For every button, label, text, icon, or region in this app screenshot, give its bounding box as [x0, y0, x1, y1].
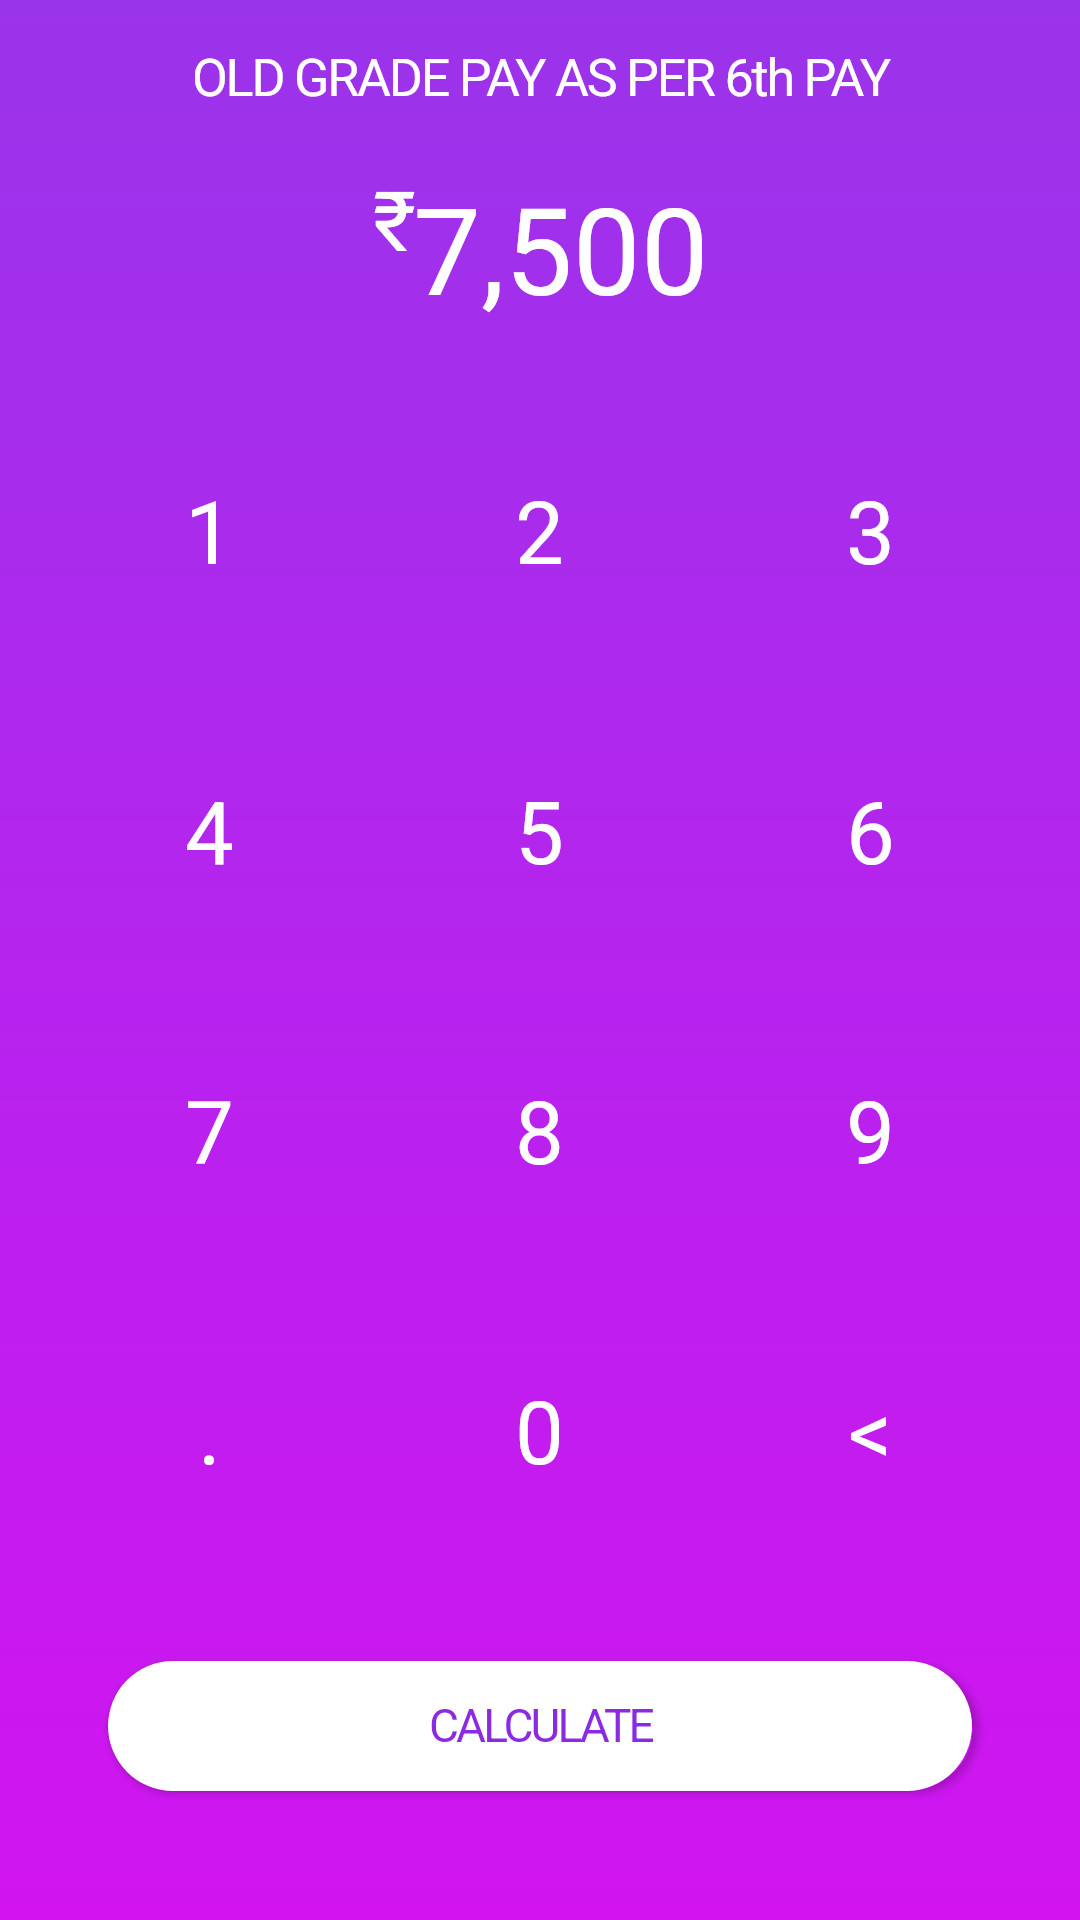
staticText: . — [198, 1383, 221, 1485]
button[interactable]: 8 — [374, 984, 705, 1284]
staticText: ₹ — [373, 174, 416, 271]
button[interactable]: Decimal point — [44, 1284, 374, 1584]
button[interactable]: 7 — [44, 984, 374, 1284]
staticText: 6 — [846, 783, 895, 885]
button[interactable]: 0 — [374, 1284, 705, 1584]
staticText: 7 — [185, 1083, 234, 1185]
staticText: OLD GRADE PAY AS PER 6th PAY — [192, 48, 889, 109]
staticText: 3 — [846, 483, 895, 585]
staticText: 2 — [515, 483, 564, 585]
button[interactable]: 6 — [705, 684, 1036, 984]
staticText: CALCULATE — [429, 1699, 652, 1753]
staticText: < — [848, 1383, 893, 1485]
staticText: 0 — [515, 1383, 564, 1485]
button[interactable]: 4 — [44, 684, 374, 984]
staticText: 9 — [846, 1083, 895, 1185]
staticText: 1 — [185, 483, 234, 585]
button[interactable]: Backspace — [705, 1284, 1036, 1584]
staticText: 5 — [515, 783, 564, 885]
staticText: 4 — [185, 783, 234, 885]
button[interactable]: 2 — [374, 384, 705, 684]
button[interactable]: 1 — [44, 384, 374, 684]
staticText: 7,500 — [413, 183, 709, 325]
button[interactable]: 3 — [705, 384, 1036, 684]
button[interactable]: 9 — [705, 984, 1036, 1284]
button[interactable]: 5 — [374, 684, 705, 984]
button[interactable]: CALCULATE — [108, 1661, 972, 1791]
staticText: 8 — [515, 1083, 564, 1185]
